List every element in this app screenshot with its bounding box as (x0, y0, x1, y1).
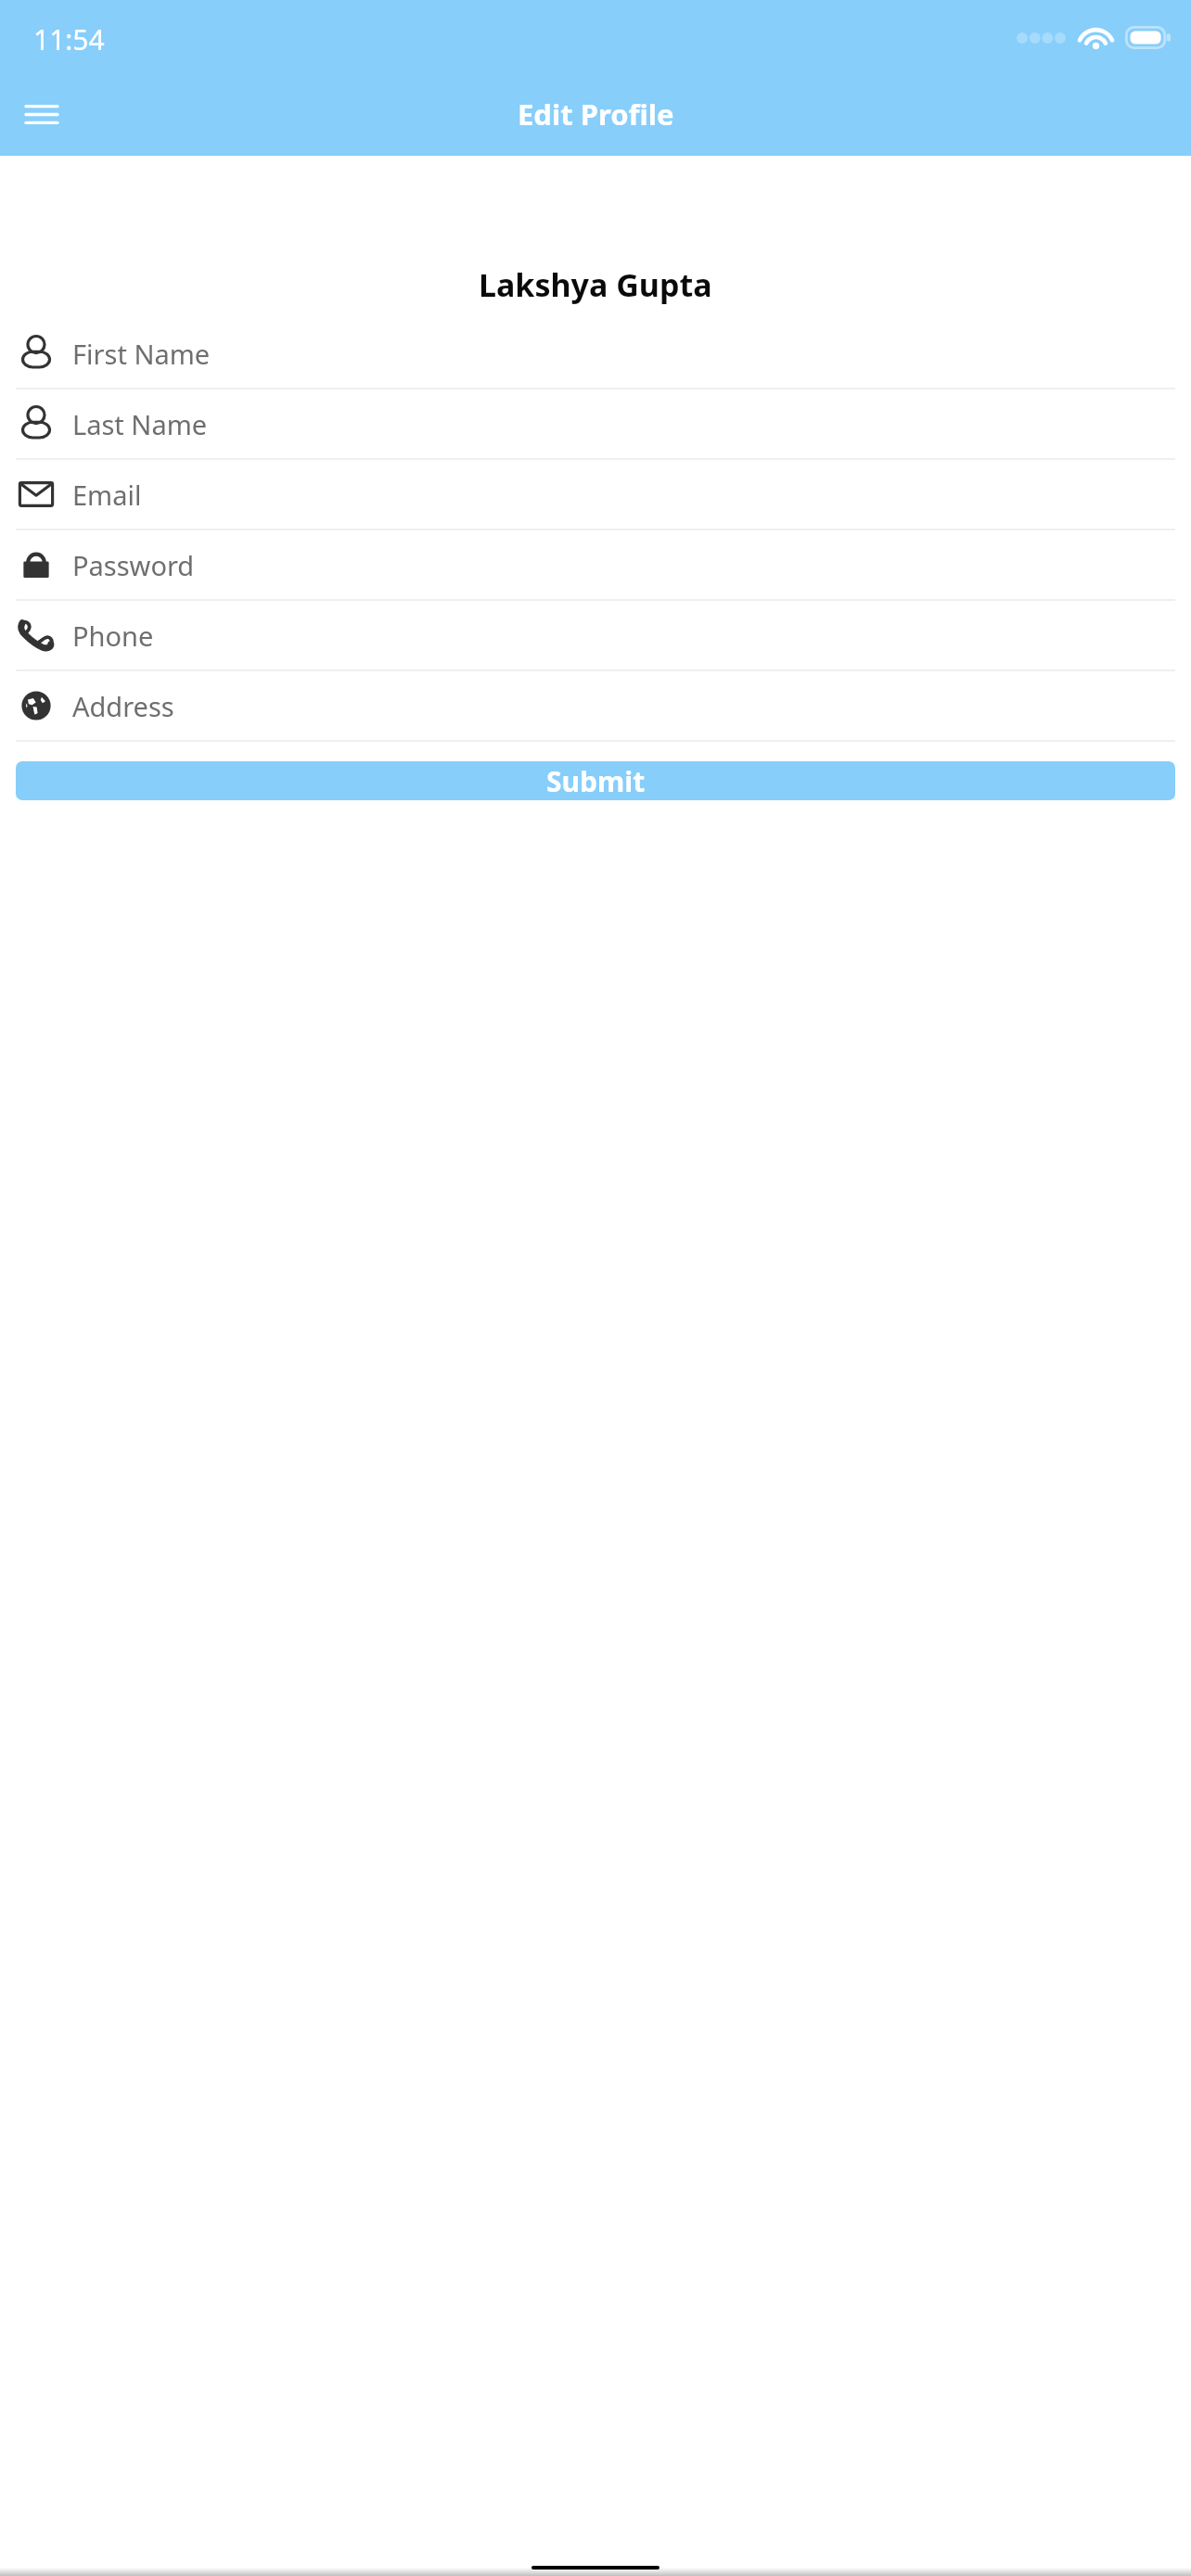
button[interactable]: Email (0, 460, 1191, 530)
staticText: Last Name (72, 406, 208, 442)
staticText: Address (72, 688, 174, 724)
staticText: First Name (72, 336, 211, 372)
button[interactable]: Last Name (0, 389, 1191, 460)
staticText: Lakshya Gupta (479, 263, 712, 306)
button[interactable]: Phone (0, 601, 1191, 671)
button[interactable]: Address (0, 671, 1191, 742)
staticText: Submit (546, 762, 646, 800)
button[interactable]: Password (0, 530, 1191, 601)
staticText: Edit Profile (518, 95, 674, 134)
staticText: 11:54 (33, 20, 105, 58)
button[interactable]: First Name (0, 319, 1191, 389)
staticText: Email (72, 477, 142, 513)
button[interactable]: Open navigation menu (9, 82, 74, 147)
button[interactable]: Submit (16, 761, 1175, 800)
staticText: Phone (72, 618, 154, 654)
staticText: Password (72, 547, 195, 583)
